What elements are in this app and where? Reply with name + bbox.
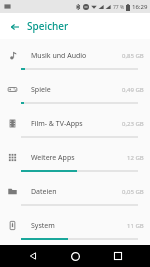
staticText: 0,05 GB <box>122 188 144 196</box>
staticText: 12 GB <box>127 154 144 162</box>
staticText: 0,85 GB <box>122 52 144 60</box>
staticText: 11 GB <box>127 222 144 230</box>
staticText: Film- & TV-Apps <box>31 119 122 129</box>
button[interactable]: Startbildschirm <box>65 246 85 266</box>
staticText: Speicher <box>27 19 69 33</box>
button[interactable]: Musik und Audio <box>0 43 150 77</box>
staticText: Weitere Apps <box>31 153 127 163</box>
button[interactable]: Zurück <box>23 246 43 266</box>
button[interactable]: Weitere Apps <box>0 145 150 179</box>
button[interactable]: Dateien <box>0 179 150 213</box>
button[interactable]: Übersicht <box>108 246 128 266</box>
staticText: System <box>31 221 127 231</box>
staticText: 77 % <box>113 4 125 11</box>
staticText: Spiele <box>31 85 122 95</box>
button[interactable]: System <box>0 213 150 245</box>
staticText: 0,23 GB <box>122 120 144 128</box>
staticText: 16:29 <box>132 3 148 11</box>
button[interactable]: Zurück <box>6 18 23 35</box>
staticText: Dateien <box>31 187 122 197</box>
staticText: Musik und Audio <box>31 51 122 61</box>
staticText: 0,49 GB <box>122 86 144 94</box>
button[interactable]: Spiele <box>0 77 150 111</box>
button[interactable]: Film- & TV-Apps <box>0 111 150 145</box>
